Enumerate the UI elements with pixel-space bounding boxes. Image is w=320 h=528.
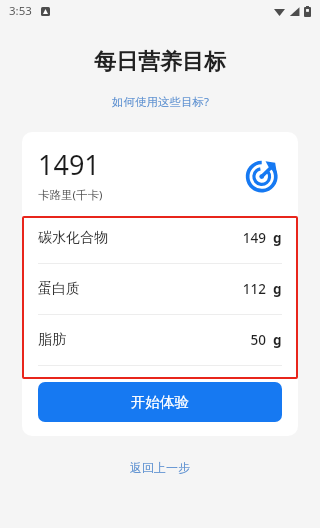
staticText: g	[273, 331, 282, 349]
staticText: 碳水化合物	[38, 229, 108, 247]
staticText: 开始体验	[131, 393, 189, 411]
button[interactable]: 开始体验	[38, 382, 282, 422]
staticText: 返回上一步	[130, 460, 190, 475]
button[interactable]: 脂肪	[22, 315, 298, 365]
staticText: 50	[250, 331, 266, 349]
staticText: 蛋白质	[38, 280, 80, 298]
staticText: 如何使用这些目标?	[112, 94, 209, 110]
button[interactable]: 蛋白质	[22, 264, 298, 314]
staticText: g	[273, 280, 282, 298]
staticText: 卡路里(千卡)	[38, 187, 103, 203]
button[interactable]: 返回上一步	[120, 456, 200, 479]
button[interactable]: 碳水化合物	[22, 213, 298, 263]
staticText: 149	[242, 229, 266, 247]
staticText: 每日营养目标	[94, 48, 226, 76]
button[interactable]: 如何使用这些目标?	[104, 92, 217, 112]
staticText: g	[273, 229, 282, 247]
staticText: 1491	[38, 146, 100, 183]
staticText: 脂肪	[38, 331, 66, 349]
staticText: 3:53	[9, 3, 32, 19]
staticText: 112	[242, 280, 266, 298]
button[interactable]: Edit goal target	[244, 156, 282, 194]
